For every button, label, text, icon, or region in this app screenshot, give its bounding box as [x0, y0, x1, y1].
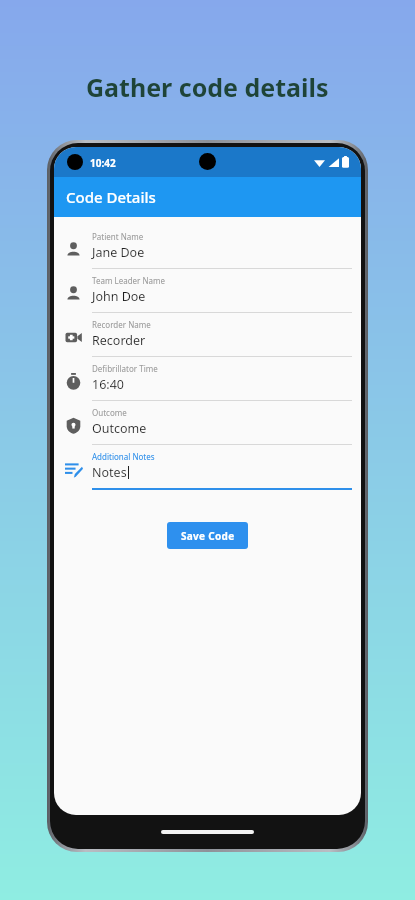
staticText: Team Leader Name: [92, 275, 166, 286]
button[interactable]: Recorder Name: [54, 315, 361, 359]
staticText: Outcome: [92, 407, 127, 418]
button[interactable]: Additional Notes: [54, 447, 361, 491]
staticText: Notes: [92, 464, 127, 481]
button[interactable]: Team Leader Name: [54, 271, 361, 315]
button[interactable]: Defibrillator Time: [54, 359, 361, 403]
button[interactable]: Outcome: [54, 403, 361, 447]
staticText: 16:40: [92, 376, 124, 393]
staticText: Recorder Name: [92, 319, 151, 330]
staticText: Save Code: [181, 529, 235, 543]
staticText: Additional Notes: [92, 451, 155, 462]
staticText: Recorder: [92, 332, 146, 349]
button[interactable]: Save Code: [167, 522, 248, 549]
staticText: Outcome: [92, 420, 147, 437]
staticText: John Doe: [92, 288, 146, 305]
staticText: Gather code details: [86, 70, 329, 104]
button[interactable]: Code Details: [54, 177, 361, 217]
staticText: Defibrillator Time: [92, 363, 158, 374]
staticText: Patient Name: [92, 231, 144, 242]
staticText: 10:42: [90, 156, 116, 170]
button[interactable]: Patient Name: [54, 227, 361, 271]
staticText: Jane Doe: [92, 244, 145, 261]
staticText: Code Details: [66, 187, 156, 207]
